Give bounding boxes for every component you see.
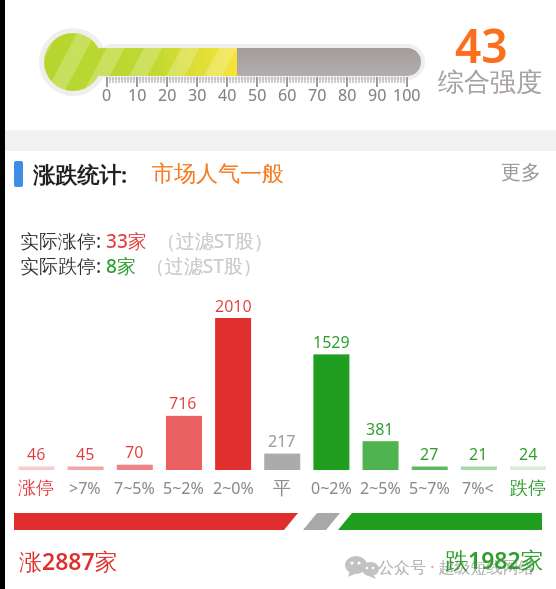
staticText: 40 (218, 84, 237, 106)
staticText: 46 (27, 443, 46, 465)
staticText: 30 (188, 84, 207, 106)
staticText: 5~7% (409, 477, 450, 499)
staticText: 21 (469, 443, 488, 465)
staticText: 43 (455, 14, 508, 74)
staticText: 7~5% (114, 477, 155, 499)
staticText: 10 (128, 84, 147, 106)
staticText: 0~2% (311, 477, 352, 499)
staticText: 100 (393, 84, 421, 106)
staticText: 716 (169, 392, 197, 414)
staticText: 更多 (501, 160, 541, 185)
button[interactable]: 更多 (477, 157, 541, 187)
staticText: 60 (278, 84, 297, 106)
staticText: 2010 (215, 295, 252, 317)
staticText: 7%< (462, 477, 494, 499)
staticText: 2~5% (360, 477, 401, 499)
staticText: 20 (158, 84, 177, 106)
staticText: 0 (102, 84, 112, 106)
staticText: 27 (420, 443, 439, 465)
staticText: 2~0% (213, 477, 254, 499)
staticText: 涨2887家 (19, 545, 118, 576)
staticText: 50 (248, 84, 267, 106)
staticText: 80 (338, 84, 357, 106)
staticText: 381 (366, 418, 394, 440)
staticText: 24 (519, 443, 538, 465)
staticText: 45 (76, 443, 95, 465)
staticText: 5~2% (163, 477, 204, 499)
staticText: 涨停 (18, 477, 54, 500)
staticText: 实际涨停: 33家 （过滤ST股） (20, 228, 273, 254)
staticText: 综合强度 (438, 66, 542, 99)
staticText: 涨跌统计: (33, 159, 128, 189)
staticText: 平 (273, 477, 291, 500)
staticText: 90 (368, 84, 387, 106)
staticText: 70 (308, 84, 327, 106)
staticText: 市场人气一般 (152, 160, 284, 188)
staticText: 公众号 · 超级短线网络 (378, 556, 535, 578)
staticText: 跌停 (510, 477, 546, 500)
staticText: 1529 (313, 331, 350, 353)
staticText: 实际跌停: 8家 （过滤ST股） (20, 253, 262, 279)
staticText: 70 (125, 441, 144, 463)
staticText: 217 (268, 430, 296, 452)
staticText: >7% (69, 477, 101, 499)
staticText: 跌1982家 (445, 544, 544, 575)
